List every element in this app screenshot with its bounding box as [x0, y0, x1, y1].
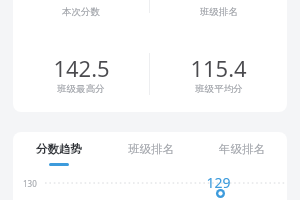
- button[interactable]: 142.5: [13, 53, 149, 95]
- staticText: 班级排名: [128, 142, 174, 156]
- staticText: 班级排名: [200, 6, 238, 18]
- staticText: 分数趋势: [36, 142, 82, 156]
- button[interactable]: 129: [13, 0, 149, 18]
- staticText: 115.4: [190, 53, 247, 83]
- staticText: 班级平均分: [195, 83, 243, 95]
- staticText: 130: [23, 178, 37, 189]
- button[interactable]: 年级排名: [196, 142, 287, 166]
- button[interactable]: 9: [150, 0, 287, 18]
- button[interactable]: 班级排名: [105, 142, 196, 166]
- staticText: 129: [206, 173, 231, 192]
- button[interactable]: 115.4: [150, 53, 287, 95]
- staticText: 年级排名: [219, 142, 265, 156]
- staticText: 本次分数: [62, 6, 100, 18]
- staticText: 142.5: [53, 53, 110, 83]
- button[interactable]: 分数趋势: [13, 142, 105, 166]
- staticText: 班级最高分: [57, 83, 105, 95]
